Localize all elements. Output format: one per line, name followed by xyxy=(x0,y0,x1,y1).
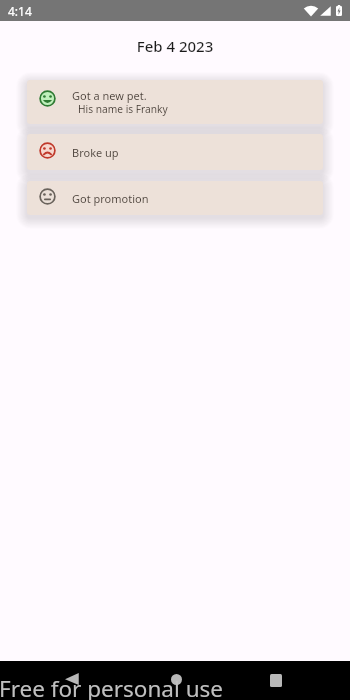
staticText: Got promotion xyxy=(72,191,149,206)
staticText: Feb 4 2023 xyxy=(0,36,350,56)
button[interactable]: Recents xyxy=(259,664,293,698)
button[interactable]: Home xyxy=(159,664,193,698)
staticText: 4:14 xyxy=(8,3,32,19)
staticText: His name is Franky xyxy=(78,102,168,116)
staticText: Got a new pet. xyxy=(72,88,147,103)
button[interactable]: Back xyxy=(56,664,90,698)
button[interactable]: Got promotion xyxy=(27,181,323,215)
staticText: Free for personal use xyxy=(0,673,224,700)
button[interactable]: Got a new pet. xyxy=(27,80,323,124)
button[interactable]: Broke up xyxy=(27,134,323,170)
staticText: Broke up xyxy=(72,145,119,160)
